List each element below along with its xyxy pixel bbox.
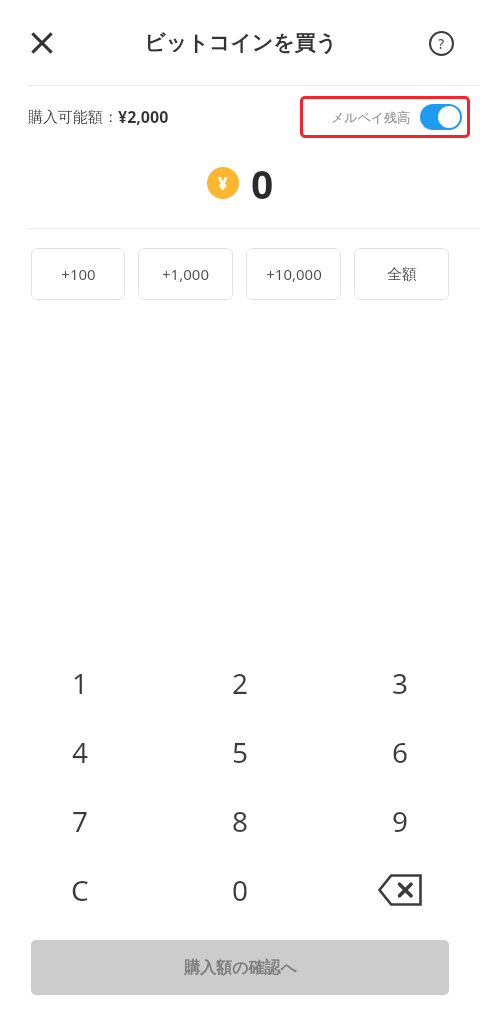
staticText: 6 [392,733,409,771]
button[interactable]: Close [14,15,70,71]
button[interactable]: メルペイ残高 [331,104,462,130]
button[interactable]: Help [416,18,466,68]
button[interactable]: 全額 [354,248,449,300]
button[interactable]: 3 [320,648,480,717]
staticText: ¥ [218,172,228,195]
staticText: 5 [232,733,249,771]
staticText: 9 [392,802,409,840]
staticText: 1 [72,664,89,702]
button[interactable]: 購入額の確認へ [31,940,449,995]
staticText: C [71,871,89,909]
button[interactable]: 0 [160,855,320,924]
staticText: 8 [232,802,249,840]
staticText: 7 [72,802,89,840]
staticText: 2 [232,664,249,702]
button[interactable]: +100 [31,248,125,300]
staticText: 4 [72,733,89,771]
button[interactable]: 2 [160,648,320,717]
button[interactable]: C [0,855,160,924]
staticText: +10,000 [266,264,322,284]
button[interactable]: 1 [0,648,160,717]
button[interactable]: Backspace [320,855,480,924]
button[interactable]: 5 [160,717,320,786]
button[interactable]: 8 [160,786,320,855]
staticText: ¥2,000 [118,106,169,128]
staticText: 全額 [387,265,417,284]
staticText: 0 [251,157,274,210]
button[interactable]: 7 [0,786,160,855]
button[interactable]: 9 [320,786,480,855]
staticText: 購入可能額： [28,108,118,127]
staticText: 購入額の確認へ [184,958,297,978]
button[interactable]: +10,000 [246,248,341,300]
staticText: +100 [61,264,96,284]
staticText: +1,000 [162,264,209,284]
button[interactable]: 6 [320,717,480,786]
button[interactable]: +1,000 [138,248,233,300]
staticText: 3 [392,664,409,702]
staticText: 0 [232,871,249,909]
button[interactable]: 4 [0,717,160,786]
staticText: ビットコインを買う [144,30,337,56]
staticText: メルペイ残高 [331,109,411,125]
staticText: ? [438,34,445,53]
